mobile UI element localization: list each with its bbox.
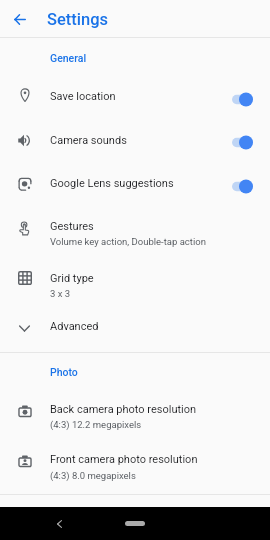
button[interactable]: Gestures (0, 206, 270, 254)
staticText: Photo (50, 366, 78, 378)
staticText: Settings (47, 10, 109, 29)
staticText: 3 x 3 (50, 288, 71, 299)
staticText: Front camera photo resolution (50, 453, 198, 466)
button[interactable]: Advanced (0, 306, 270, 350)
staticText: Advanced (50, 320, 99, 333)
button[interactable]: Camera sounds (0, 119, 270, 163)
staticText: General (50, 52, 87, 64)
button[interactable]: Front camera photo resolution (0, 440, 270, 488)
staticText: Camera sounds (50, 134, 127, 147)
staticText: Google Lens suggestions (50, 177, 174, 190)
staticText: Save location (50, 90, 116, 103)
staticText: Volume key action, Double-tap action (50, 236, 206, 247)
staticText: (4:3) 8.0 megapixels (50, 470, 136, 481)
button[interactable]: Google Lens suggestions (0, 163, 270, 206)
staticText: (4:3) 12.2 megapixels (50, 419, 142, 430)
button[interactable]: Grid type (0, 256, 270, 304)
button[interactable]: Back (5, 4, 35, 34)
staticText: Back camera photo resolution (50, 403, 197, 416)
staticText: Grid type (50, 272, 94, 285)
button[interactable]: Home (125, 521, 145, 526)
staticText: Gestures (50, 220, 94, 233)
button[interactable]: Back camera photo resolution (0, 390, 270, 438)
button[interactable]: Save location (0, 75, 270, 119)
button[interactable]: Back (47, 512, 71, 536)
